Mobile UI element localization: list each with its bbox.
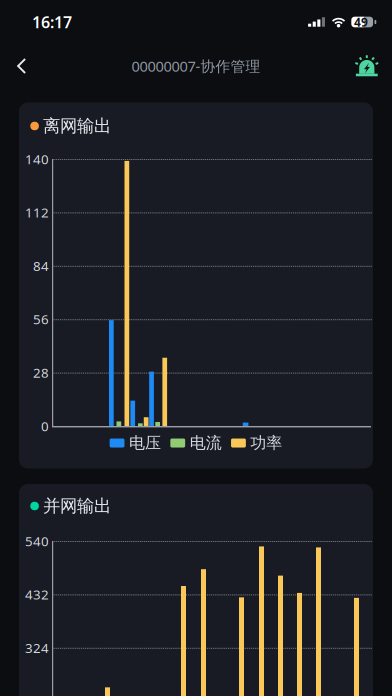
button[interactable]: Alarm xyxy=(342,44,392,88)
staticText: 16:17 xyxy=(32,11,72,33)
staticText: 56 xyxy=(33,310,49,328)
staticText: 0 xyxy=(41,417,49,435)
staticText: 84 xyxy=(33,257,49,275)
staticText: 112 xyxy=(25,203,49,221)
staticText: 49 xyxy=(354,14,368,30)
staticText: 540 xyxy=(25,532,49,550)
staticText: 28 xyxy=(33,364,49,381)
staticText: 离网输出 xyxy=(43,115,111,137)
staticText: 140 xyxy=(25,150,49,168)
staticText: 电压 xyxy=(129,433,161,453)
staticText: 324 xyxy=(25,639,49,657)
button[interactable]: Back xyxy=(0,44,43,88)
staticText: 并网输出 xyxy=(43,495,111,517)
staticText: 电流 xyxy=(190,433,222,453)
staticText: 00000007-协作管理 xyxy=(131,56,260,76)
staticText: 432 xyxy=(25,585,49,603)
staticText: 功率 xyxy=(250,433,282,453)
